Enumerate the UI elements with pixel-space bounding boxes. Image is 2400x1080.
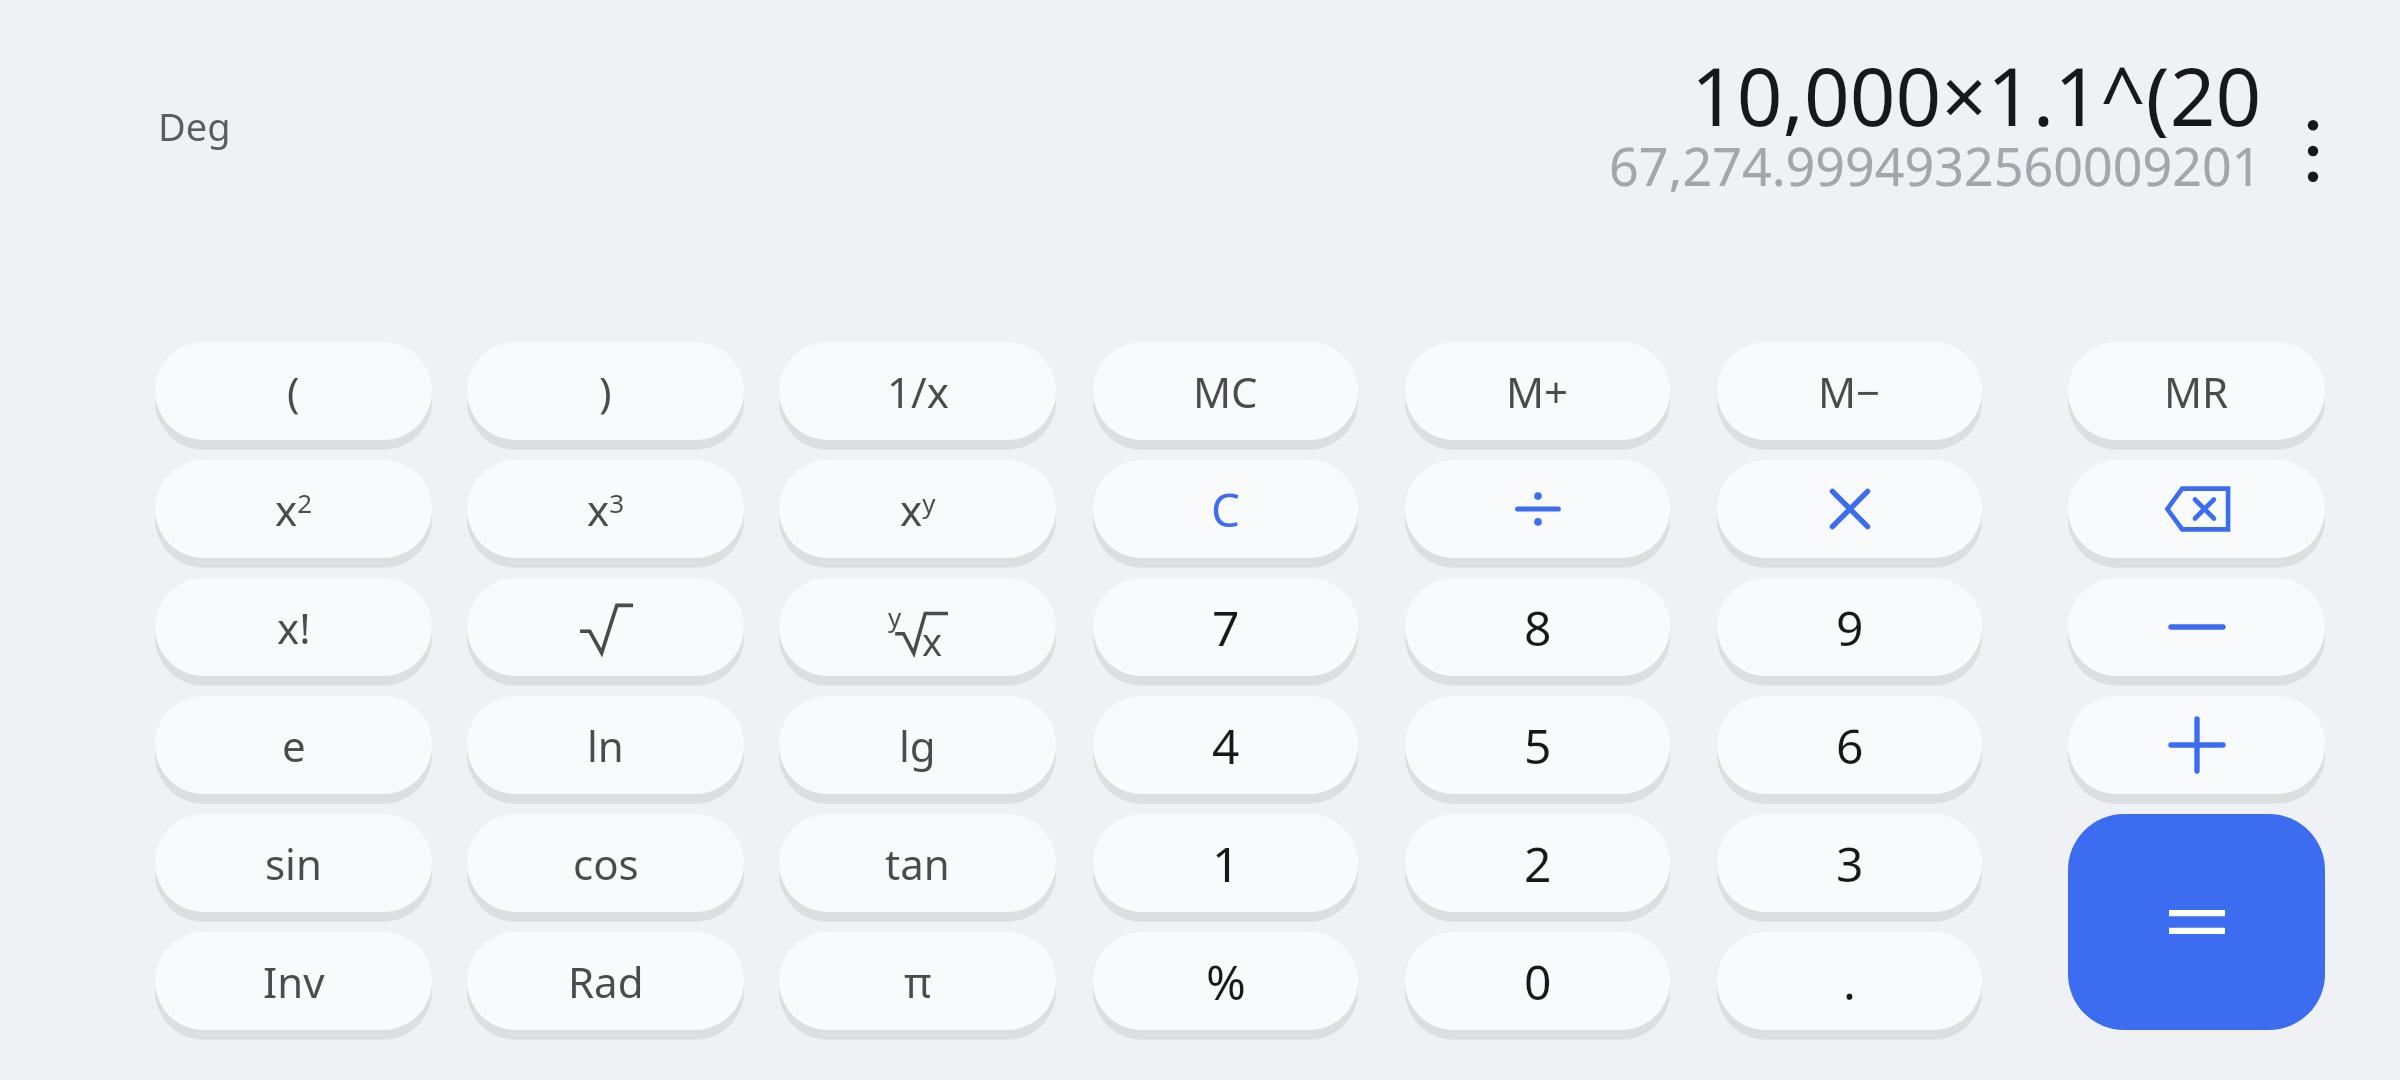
button[interactable]: . xyxy=(1717,932,1982,1030)
staticText: x2 xyxy=(275,481,313,538)
button[interactable]: Square root xyxy=(467,578,744,676)
button[interactable]: ) xyxy=(467,342,744,440)
button[interactable]: 1 xyxy=(1093,814,1358,912)
staticText: 67,274.9994932560009201 xyxy=(1609,130,2262,192)
staticText: . xyxy=(1843,949,1856,1014)
button[interactable]: 0 xyxy=(1405,932,1670,1030)
button[interactable]: Multiply xyxy=(1717,460,1982,558)
staticText: x3 xyxy=(587,481,625,538)
staticText: xy xyxy=(900,481,936,538)
button[interactable]: 3 xyxy=(1717,814,1982,912)
staticText: x xyxy=(922,615,943,667)
button[interactable]: M+ xyxy=(1405,342,1670,440)
staticText: 5 xyxy=(1524,713,1552,778)
button[interactable]: lg xyxy=(779,696,1056,794)
staticText: M+ xyxy=(1506,363,1569,420)
staticText: Inv xyxy=(263,953,325,1010)
button[interactable]: 6 xyxy=(1717,696,1982,794)
button[interactable]: Rad xyxy=(467,932,744,1030)
staticText: 3 xyxy=(1836,831,1864,896)
staticText: MC xyxy=(1193,363,1258,420)
button[interactable]: tan xyxy=(779,814,1056,912)
button[interactable]: e xyxy=(155,696,432,794)
staticText: 4 xyxy=(1212,713,1240,778)
button[interactable]: M− xyxy=(1717,342,1982,440)
button[interactable]: 9 xyxy=(1717,578,1982,676)
staticText: 8 xyxy=(1524,595,1552,660)
button[interactable]: MC xyxy=(1093,342,1358,440)
button[interactable]: Divide xyxy=(1405,460,1670,558)
staticText: 1/x xyxy=(887,363,949,420)
staticText: tan xyxy=(885,835,950,892)
staticText: 10,000×1.1^(20 xyxy=(1691,40,2262,138)
staticText: lg xyxy=(899,717,936,774)
button[interactable]: 8 xyxy=(1405,578,1670,676)
staticText: ) xyxy=(599,363,612,420)
staticText: 9 xyxy=(1836,595,1864,660)
staticText: ln xyxy=(587,717,624,774)
button[interactable]: 5 xyxy=(1405,696,1670,794)
staticText: MR xyxy=(2164,363,2229,420)
staticText: 0 xyxy=(1524,949,1552,1014)
button[interactable]: 2 xyxy=(1405,814,1670,912)
button[interactable]: Equals xyxy=(2068,814,2325,1030)
staticText: x! xyxy=(277,599,311,656)
button[interactable]: Minus xyxy=(2068,578,2325,676)
staticText: cos xyxy=(573,835,639,892)
staticText: y xyxy=(888,599,902,634)
button[interactable]: MR xyxy=(2068,342,2325,440)
staticText: Rad xyxy=(568,953,644,1010)
button[interactable]: x2 xyxy=(155,460,432,558)
staticText: sin xyxy=(265,835,322,892)
staticText: Deg xyxy=(158,100,231,152)
staticText: 7 xyxy=(1212,595,1240,660)
staticText: 1 xyxy=(1212,831,1240,896)
button[interactable]: x3 xyxy=(467,460,744,558)
staticText: e xyxy=(282,717,306,774)
staticText: C xyxy=(1211,478,1241,541)
button[interactable]: % xyxy=(1093,932,1358,1030)
button[interactable]: 4 xyxy=(1093,696,1358,794)
staticText: % xyxy=(1206,949,1246,1014)
staticText: 2 xyxy=(1524,831,1552,896)
button[interactable]: xy xyxy=(779,460,1056,558)
button[interactable]: 7 xyxy=(1093,578,1358,676)
staticText: 6 xyxy=(1836,713,1864,778)
button[interactable]: 1/x xyxy=(779,342,1056,440)
staticText: ( xyxy=(287,363,300,420)
button[interactable]: C xyxy=(1093,460,1358,558)
button[interactable]: π xyxy=(779,932,1056,1030)
button[interactable]: y-th root of x xyxy=(779,578,1056,676)
button[interactable]: More options xyxy=(2274,108,2352,194)
button[interactable]: Plus xyxy=(2068,696,2325,794)
staticText: π xyxy=(904,953,932,1010)
button[interactable]: Backspace xyxy=(2068,460,2325,558)
button[interactable]: x! xyxy=(155,578,432,676)
staticText: M− xyxy=(1818,363,1881,420)
button[interactable]: ln xyxy=(467,696,744,794)
button[interactable]: ( xyxy=(155,342,432,440)
button[interactable]: cos xyxy=(467,814,744,912)
button[interactable]: sin xyxy=(155,814,432,912)
button[interactable]: Inv xyxy=(155,932,432,1030)
